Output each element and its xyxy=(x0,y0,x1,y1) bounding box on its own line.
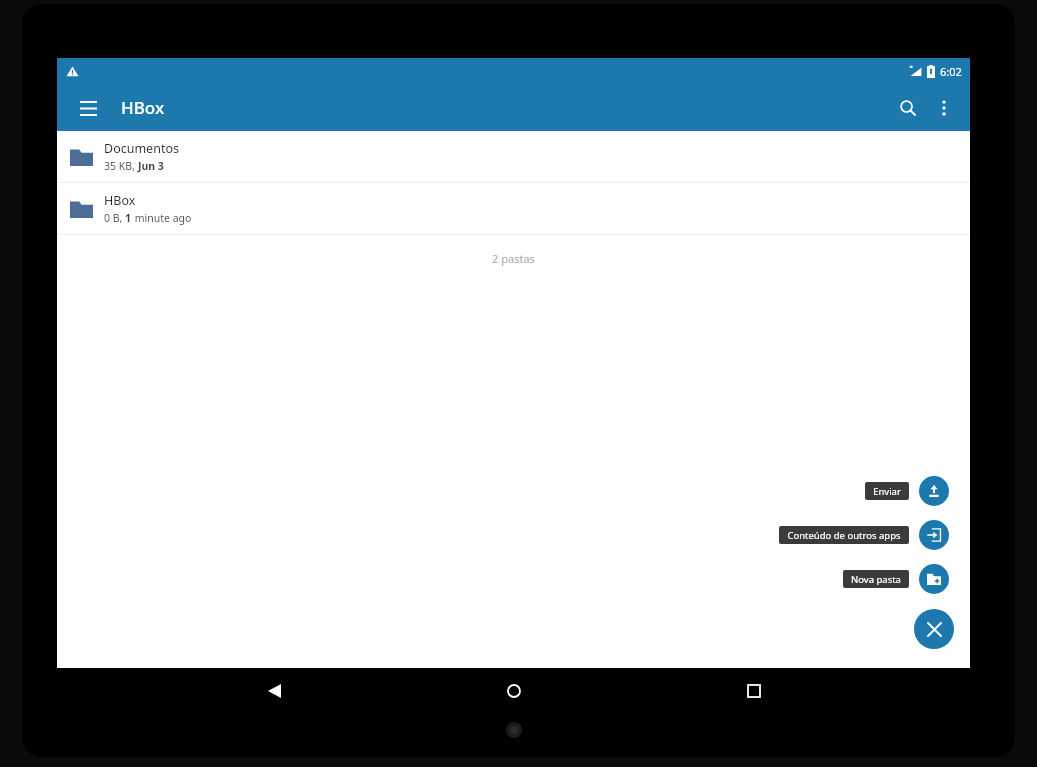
staticText: 0 B, xyxy=(104,211,125,225)
button[interactable]: Fechar menu xyxy=(914,609,954,649)
staticText: Jun 3 xyxy=(138,159,164,173)
button[interactable]: Enviar xyxy=(865,482,909,500)
button[interactable]: Home xyxy=(490,668,538,713)
staticText: 2 pastas xyxy=(492,251,535,266)
staticText: minute ago xyxy=(132,211,192,225)
button[interactable]: Nova pasta xyxy=(843,570,909,588)
button[interactable]: Enviar xyxy=(919,476,949,506)
button[interactable]: HBox xyxy=(57,183,970,234)
button[interactable]: Nova pasta xyxy=(919,564,949,594)
staticText: 6:02 xyxy=(940,64,962,79)
staticText: Nova pasta xyxy=(851,573,901,585)
staticText: Enviar xyxy=(873,485,901,497)
staticText: HBox xyxy=(121,96,165,119)
staticText: 1 xyxy=(125,211,132,225)
button[interactable]: Search xyxy=(891,91,925,125)
button[interactable]: Documentos xyxy=(57,131,970,182)
button[interactable]: Conteúdo de outros apps xyxy=(779,526,909,544)
button[interactable]: Back xyxy=(250,668,298,713)
staticText: Conteúdo de outros apps xyxy=(787,529,901,541)
button[interactable]: Conteúdo de outros apps xyxy=(919,520,949,550)
button[interactable]: Open navigation drawer xyxy=(74,94,102,122)
button[interactable]: More options xyxy=(927,91,961,125)
staticText: HBox xyxy=(104,192,136,209)
staticText: Documentos xyxy=(104,140,179,157)
button[interactable]: Recent apps xyxy=(730,668,778,713)
staticText: 35 KB, xyxy=(104,159,138,173)
